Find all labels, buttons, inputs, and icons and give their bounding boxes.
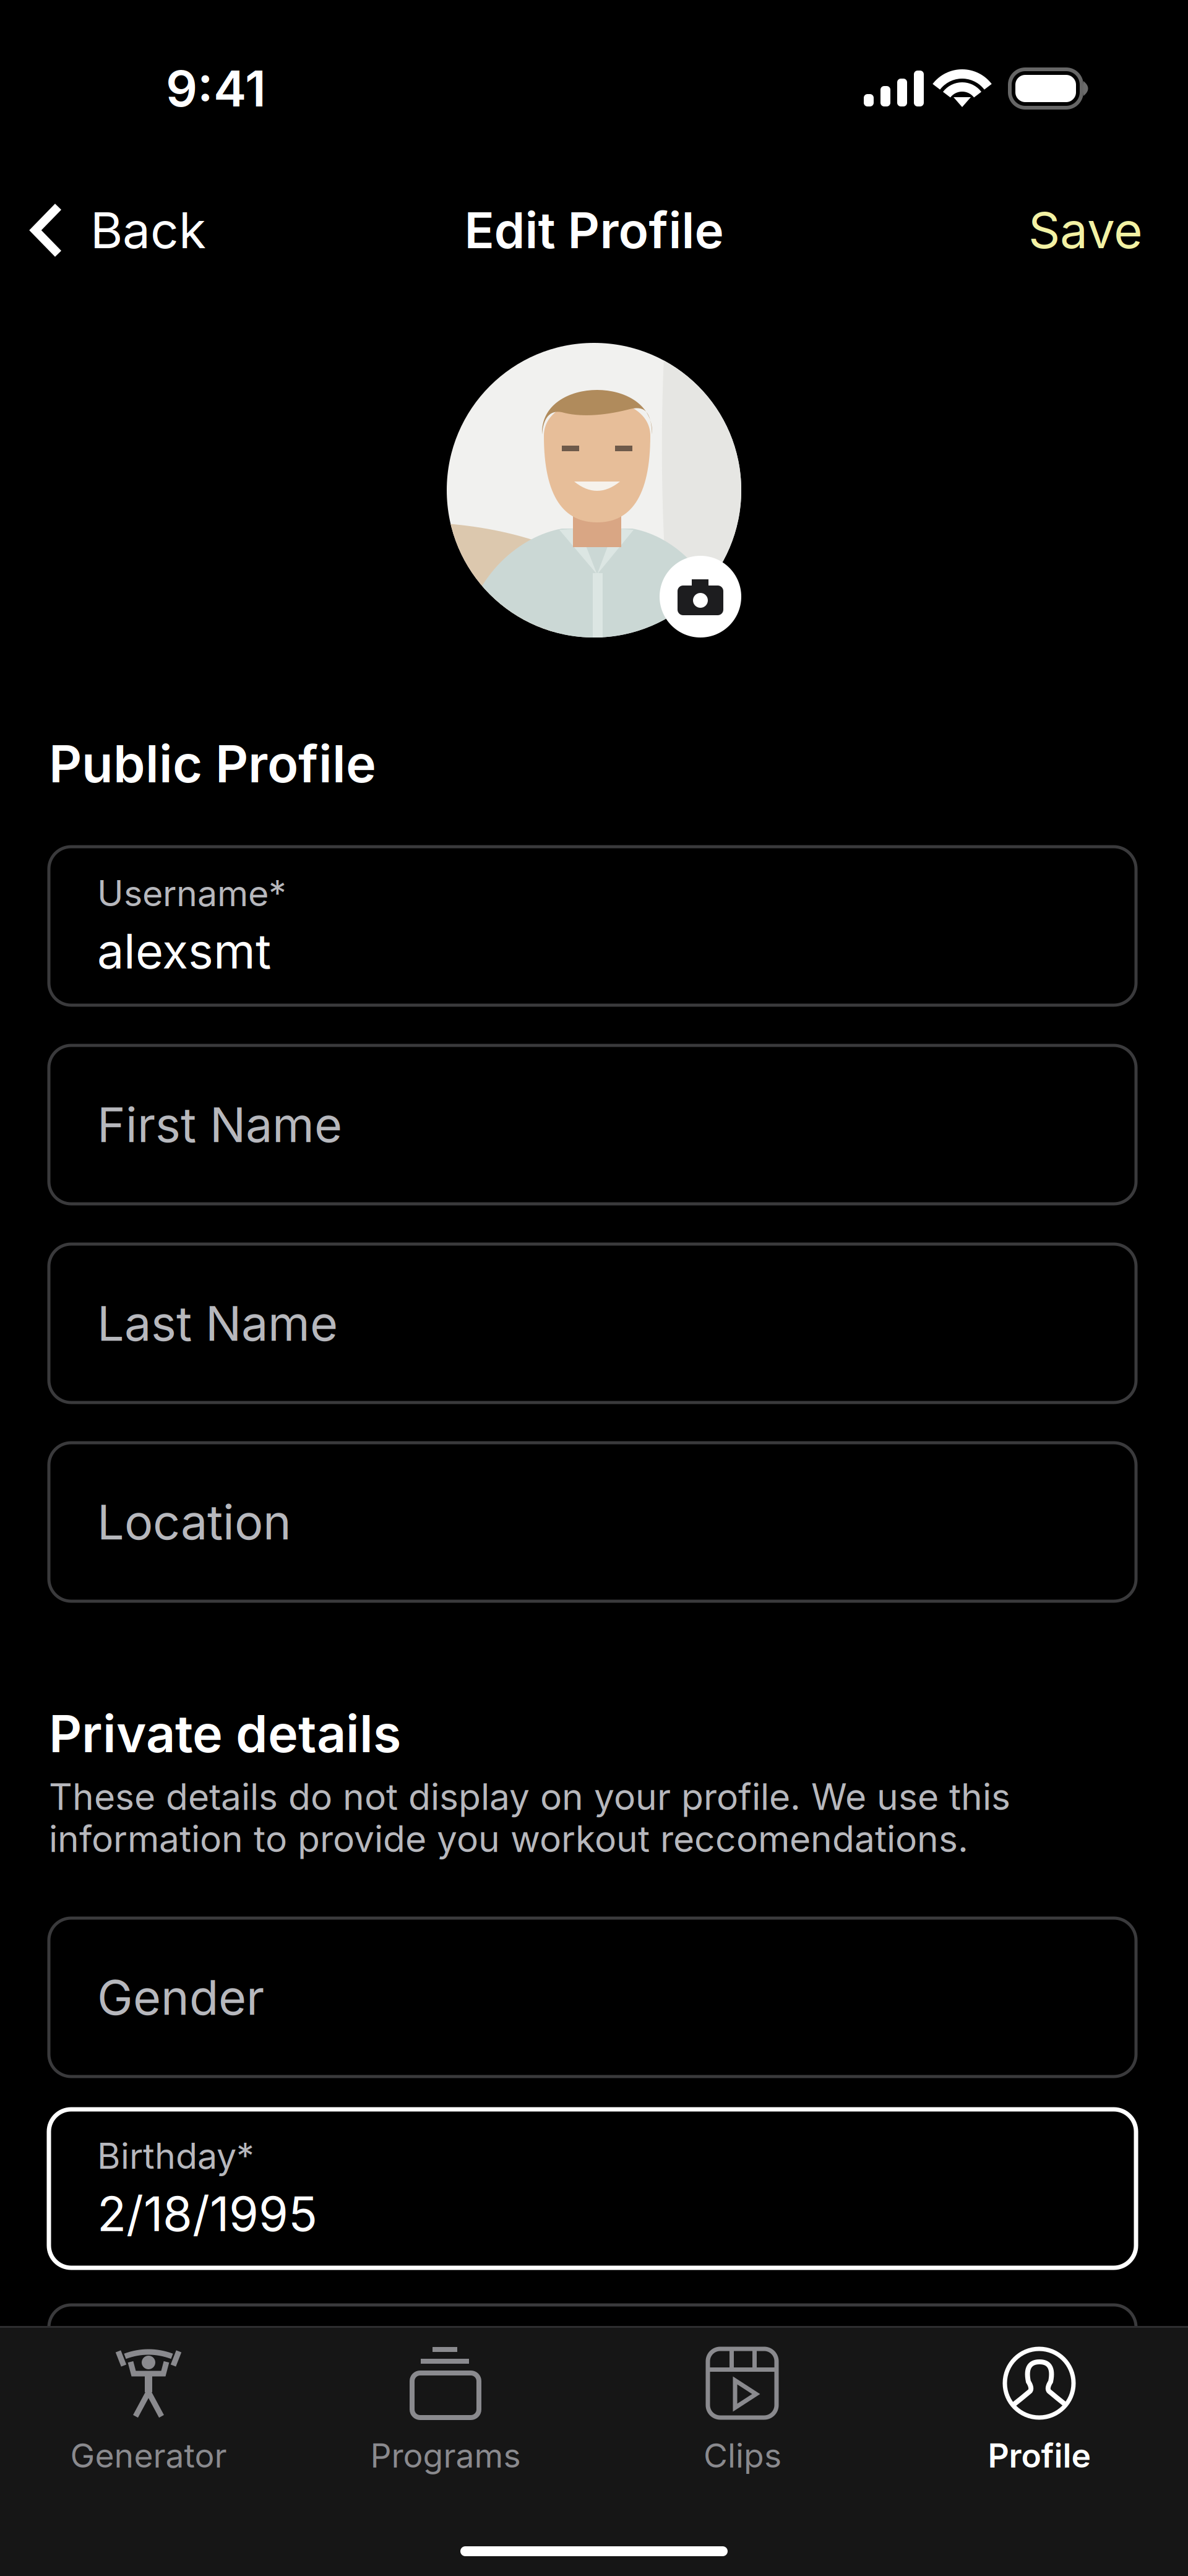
button[interactable]: Username* [49, 847, 1136, 1005]
staticText: Public Profile [49, 733, 376, 795]
button[interactable]: Birthday* [49, 2109, 1136, 2268]
button[interactable]: Last Name [49, 1244, 1136, 1403]
button[interactable]: Save [1004, 190, 1188, 270]
staticText: Edit Profile [464, 200, 724, 260]
staticText: Location [97, 1493, 291, 1551]
staticText: information to provide you workout recco… [49, 1817, 968, 1861]
staticText: Private details [49, 1703, 401, 1765]
button[interactable]: Change profile photo [660, 556, 741, 638]
button[interactable]: Programs [297, 2346, 594, 2470]
button[interactable]: First Name [49, 1045, 1136, 1204]
staticText: Profile [988, 2436, 1091, 2475]
staticText: First Name [97, 1096, 342, 1154]
button[interactable]: Height [49, 2305, 1136, 2463]
button[interactable]: Gender [49, 1918, 1136, 2077]
staticText: Generator [70, 2436, 227, 2475]
staticText: Back [90, 200, 206, 260]
button[interactable]: Clips [594, 2346, 891, 2470]
staticText: Programs [370, 2436, 521, 2475]
staticText: Save [1028, 200, 1143, 260]
staticText: Username* [97, 872, 286, 915]
staticText: 2/18/1995 [97, 2185, 317, 2243]
button[interactable]: Back [0, 190, 231, 270]
staticText: 9:41 [166, 59, 266, 118]
staticText: Height [97, 2355, 245, 2413]
staticText: Birthday* [97, 2134, 254, 2177]
button[interactable]: Generator [0, 2346, 297, 2470]
button[interactable]: Profile [891, 2346, 1188, 2470]
staticText: Clips [704, 2436, 781, 2475]
staticText: Gender [97, 1968, 264, 2026]
staticText: These details do not display on your pro… [49, 1775, 1010, 1819]
staticText: alexsmt [97, 922, 271, 980]
staticText: Last Name [97, 1294, 338, 1352]
button[interactable]: Location [49, 1443, 1136, 1601]
